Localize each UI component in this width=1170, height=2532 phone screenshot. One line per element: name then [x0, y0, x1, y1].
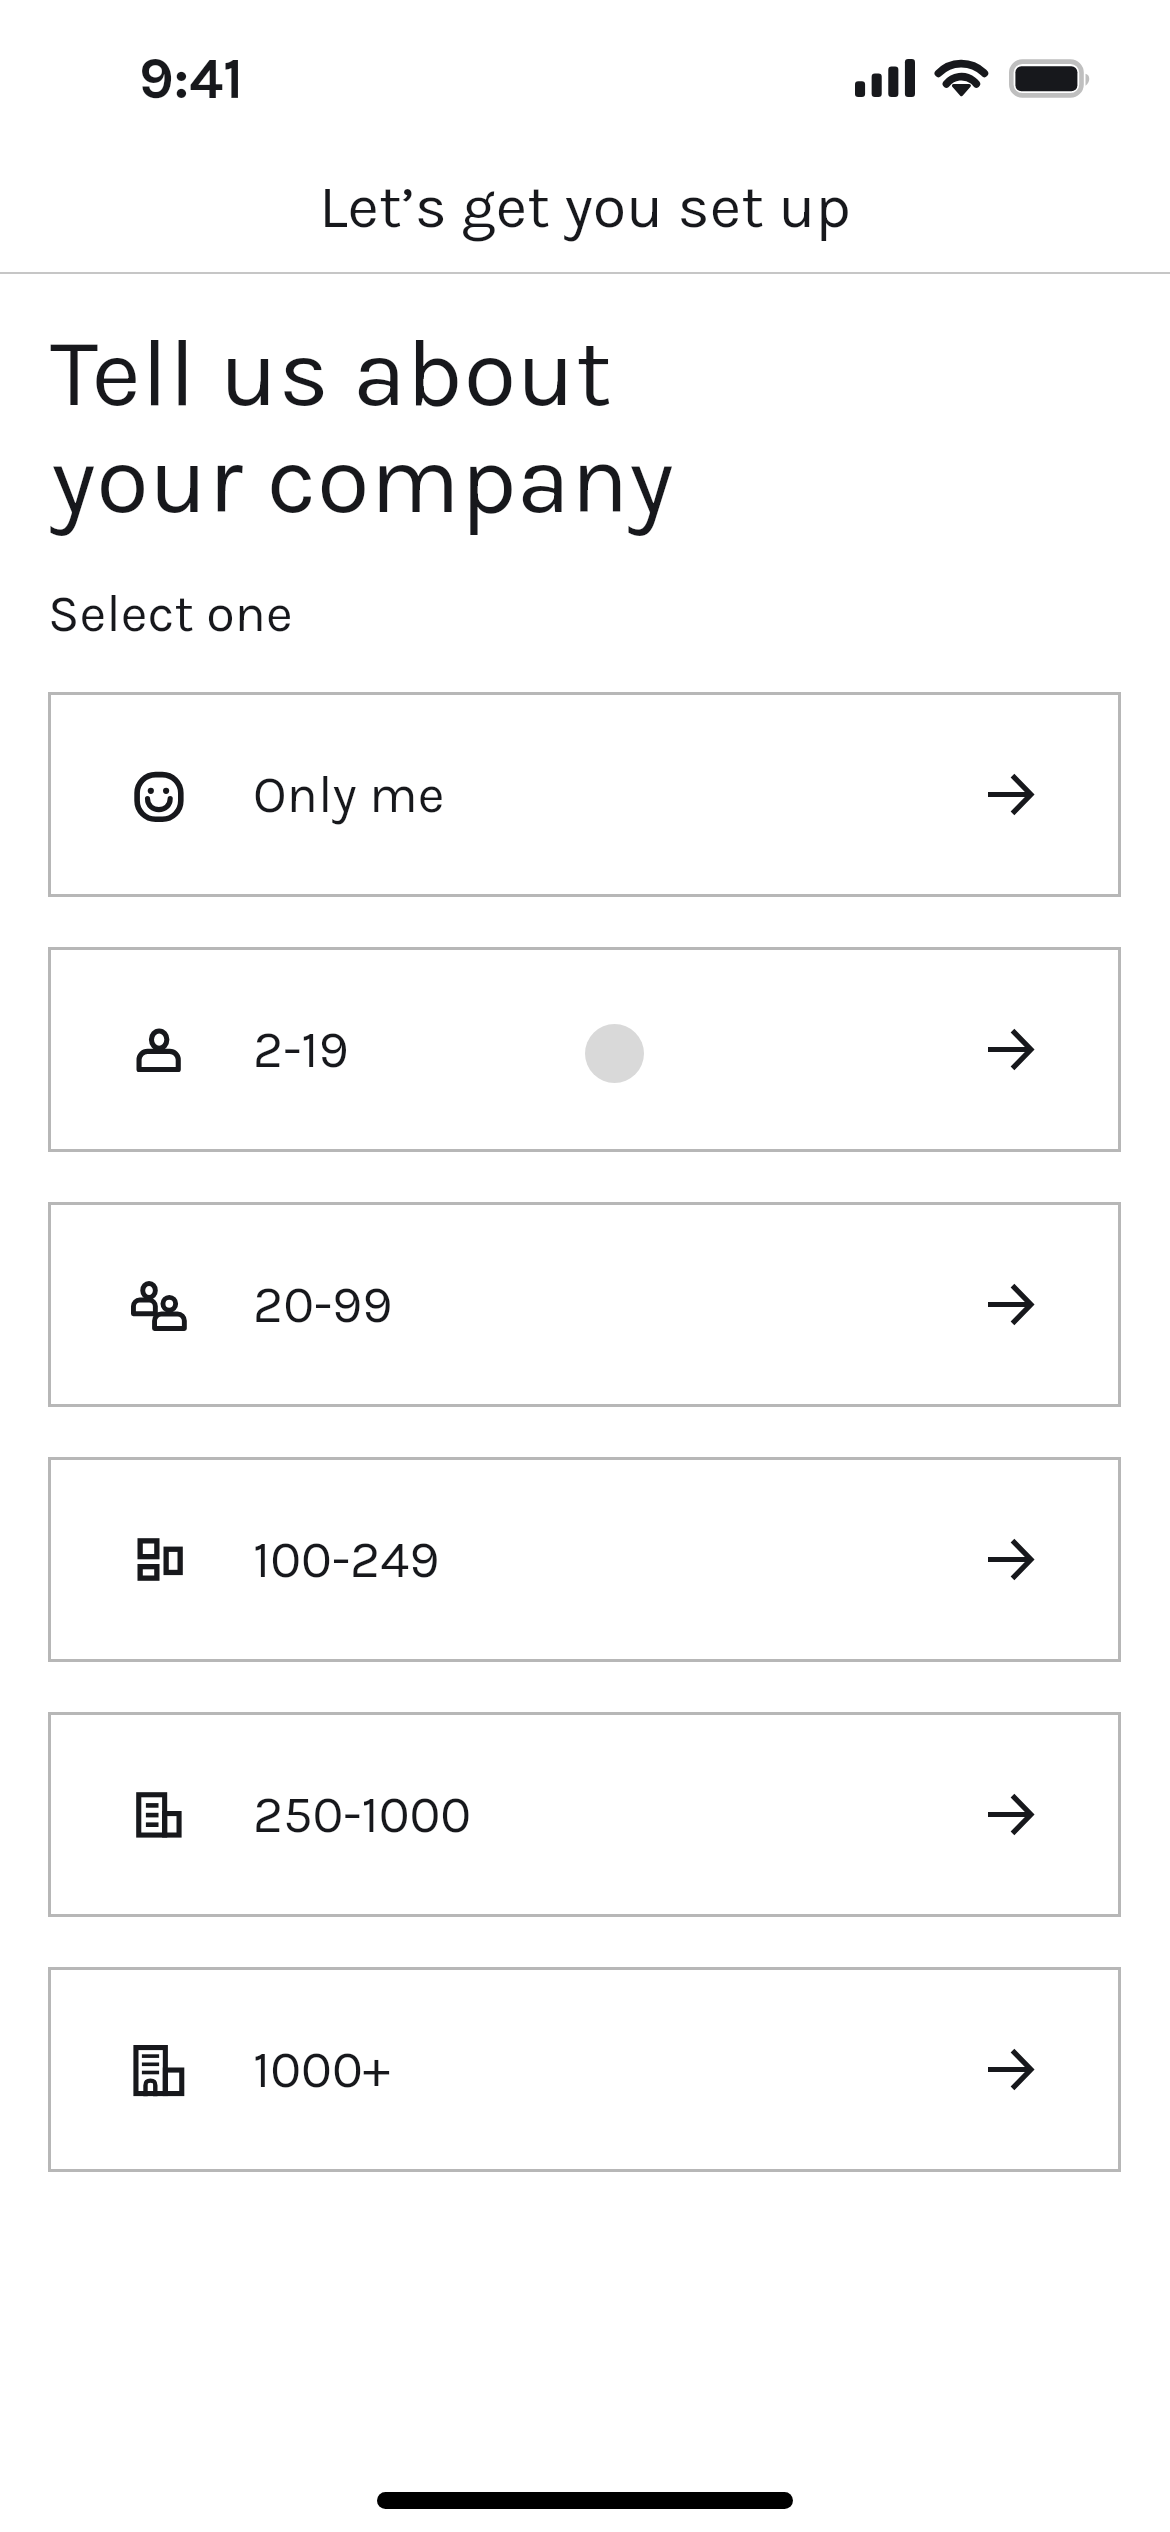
button[interactable]: 20-99 — [48, 1202, 1121, 1407]
button[interactable]: Only me — [48, 692, 1121, 897]
staticText: 9:41 — [139, 46, 244, 113]
button[interactable]: 1000+ — [48, 1967, 1121, 2172]
button[interactable]: 2-19 — [48, 947, 1121, 1152]
staticText: Only me — [253, 764, 445, 825]
staticText: Select one — [48, 583, 293, 644]
other: Wi-Fi — [936, 57, 988, 95]
other: Battery — [1009, 59, 1092, 97]
staticText: 1000+ — [253, 2039, 391, 2100]
staticText: 100-249 — [253, 1529, 440, 1590]
staticText: 20-99 — [253, 1274, 393, 1335]
staticText: 2-19 — [253, 1019, 349, 1080]
button[interactable]: 250-1000 — [48, 1712, 1121, 1917]
staticText: your company — [51, 424, 675, 536]
button[interactable]: 100-249 — [48, 1457, 1121, 1662]
staticText: Tell us about — [50, 317, 613, 429]
staticText: Let’s get you set up — [0, 171, 1170, 242]
staticText: 250-1000 — [253, 1784, 472, 1845]
other: Cellular signal — [855, 58, 915, 97]
